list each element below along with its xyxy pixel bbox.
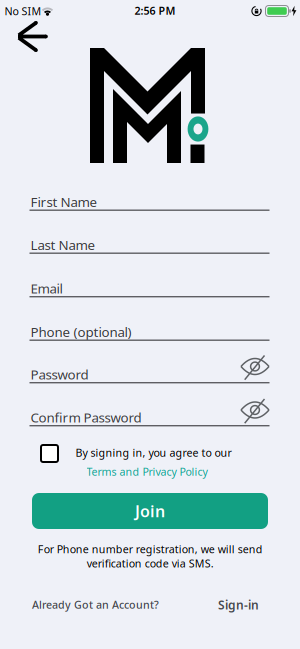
button[interactable]: Password [29, 357, 269, 383]
button[interactable]: Phone (optional) [29, 315, 269, 341]
button[interactable]: Join [32, 493, 268, 529]
staticText: Confirm Password [30, 408, 141, 426]
staticText: Sign-in [218, 597, 259, 613]
button[interactable]: Agree to terms [41, 445, 58, 462]
button[interactable]: Last Name [29, 228, 269, 254]
staticText: Password [30, 365, 88, 383]
button[interactable]: Confirm Password [29, 400, 269, 426]
staticText: By signing in, you agree to our [75, 445, 231, 460]
staticText: Last Name [30, 236, 95, 254]
button[interactable]: Sign-in [218, 597, 259, 613]
button[interactable]: First Name [29, 185, 269, 211]
button[interactable]: Terms and Privacy Policy [86, 464, 207, 479]
button[interactable]: Show password [239, 352, 271, 382]
staticText: Phone (optional) [30, 323, 131, 341]
staticText: First Name [30, 193, 97, 211]
button[interactable]: Email [29, 271, 269, 297]
staticText: Terms and Privacy Policy [86, 464, 207, 479]
staticText: Already Got an Account? [32, 597, 159, 612]
button[interactable]: Show password [239, 395, 271, 425]
staticText: 2:56 PM [134, 4, 175, 18]
staticText: Email [30, 279, 62, 297]
staticText: For Phone number registration, we will s… [37, 542, 262, 570]
staticText: No SIM [4, 4, 41, 18]
button[interactable]: Back [14, 20, 49, 53]
staticText: Join [135, 500, 165, 522]
